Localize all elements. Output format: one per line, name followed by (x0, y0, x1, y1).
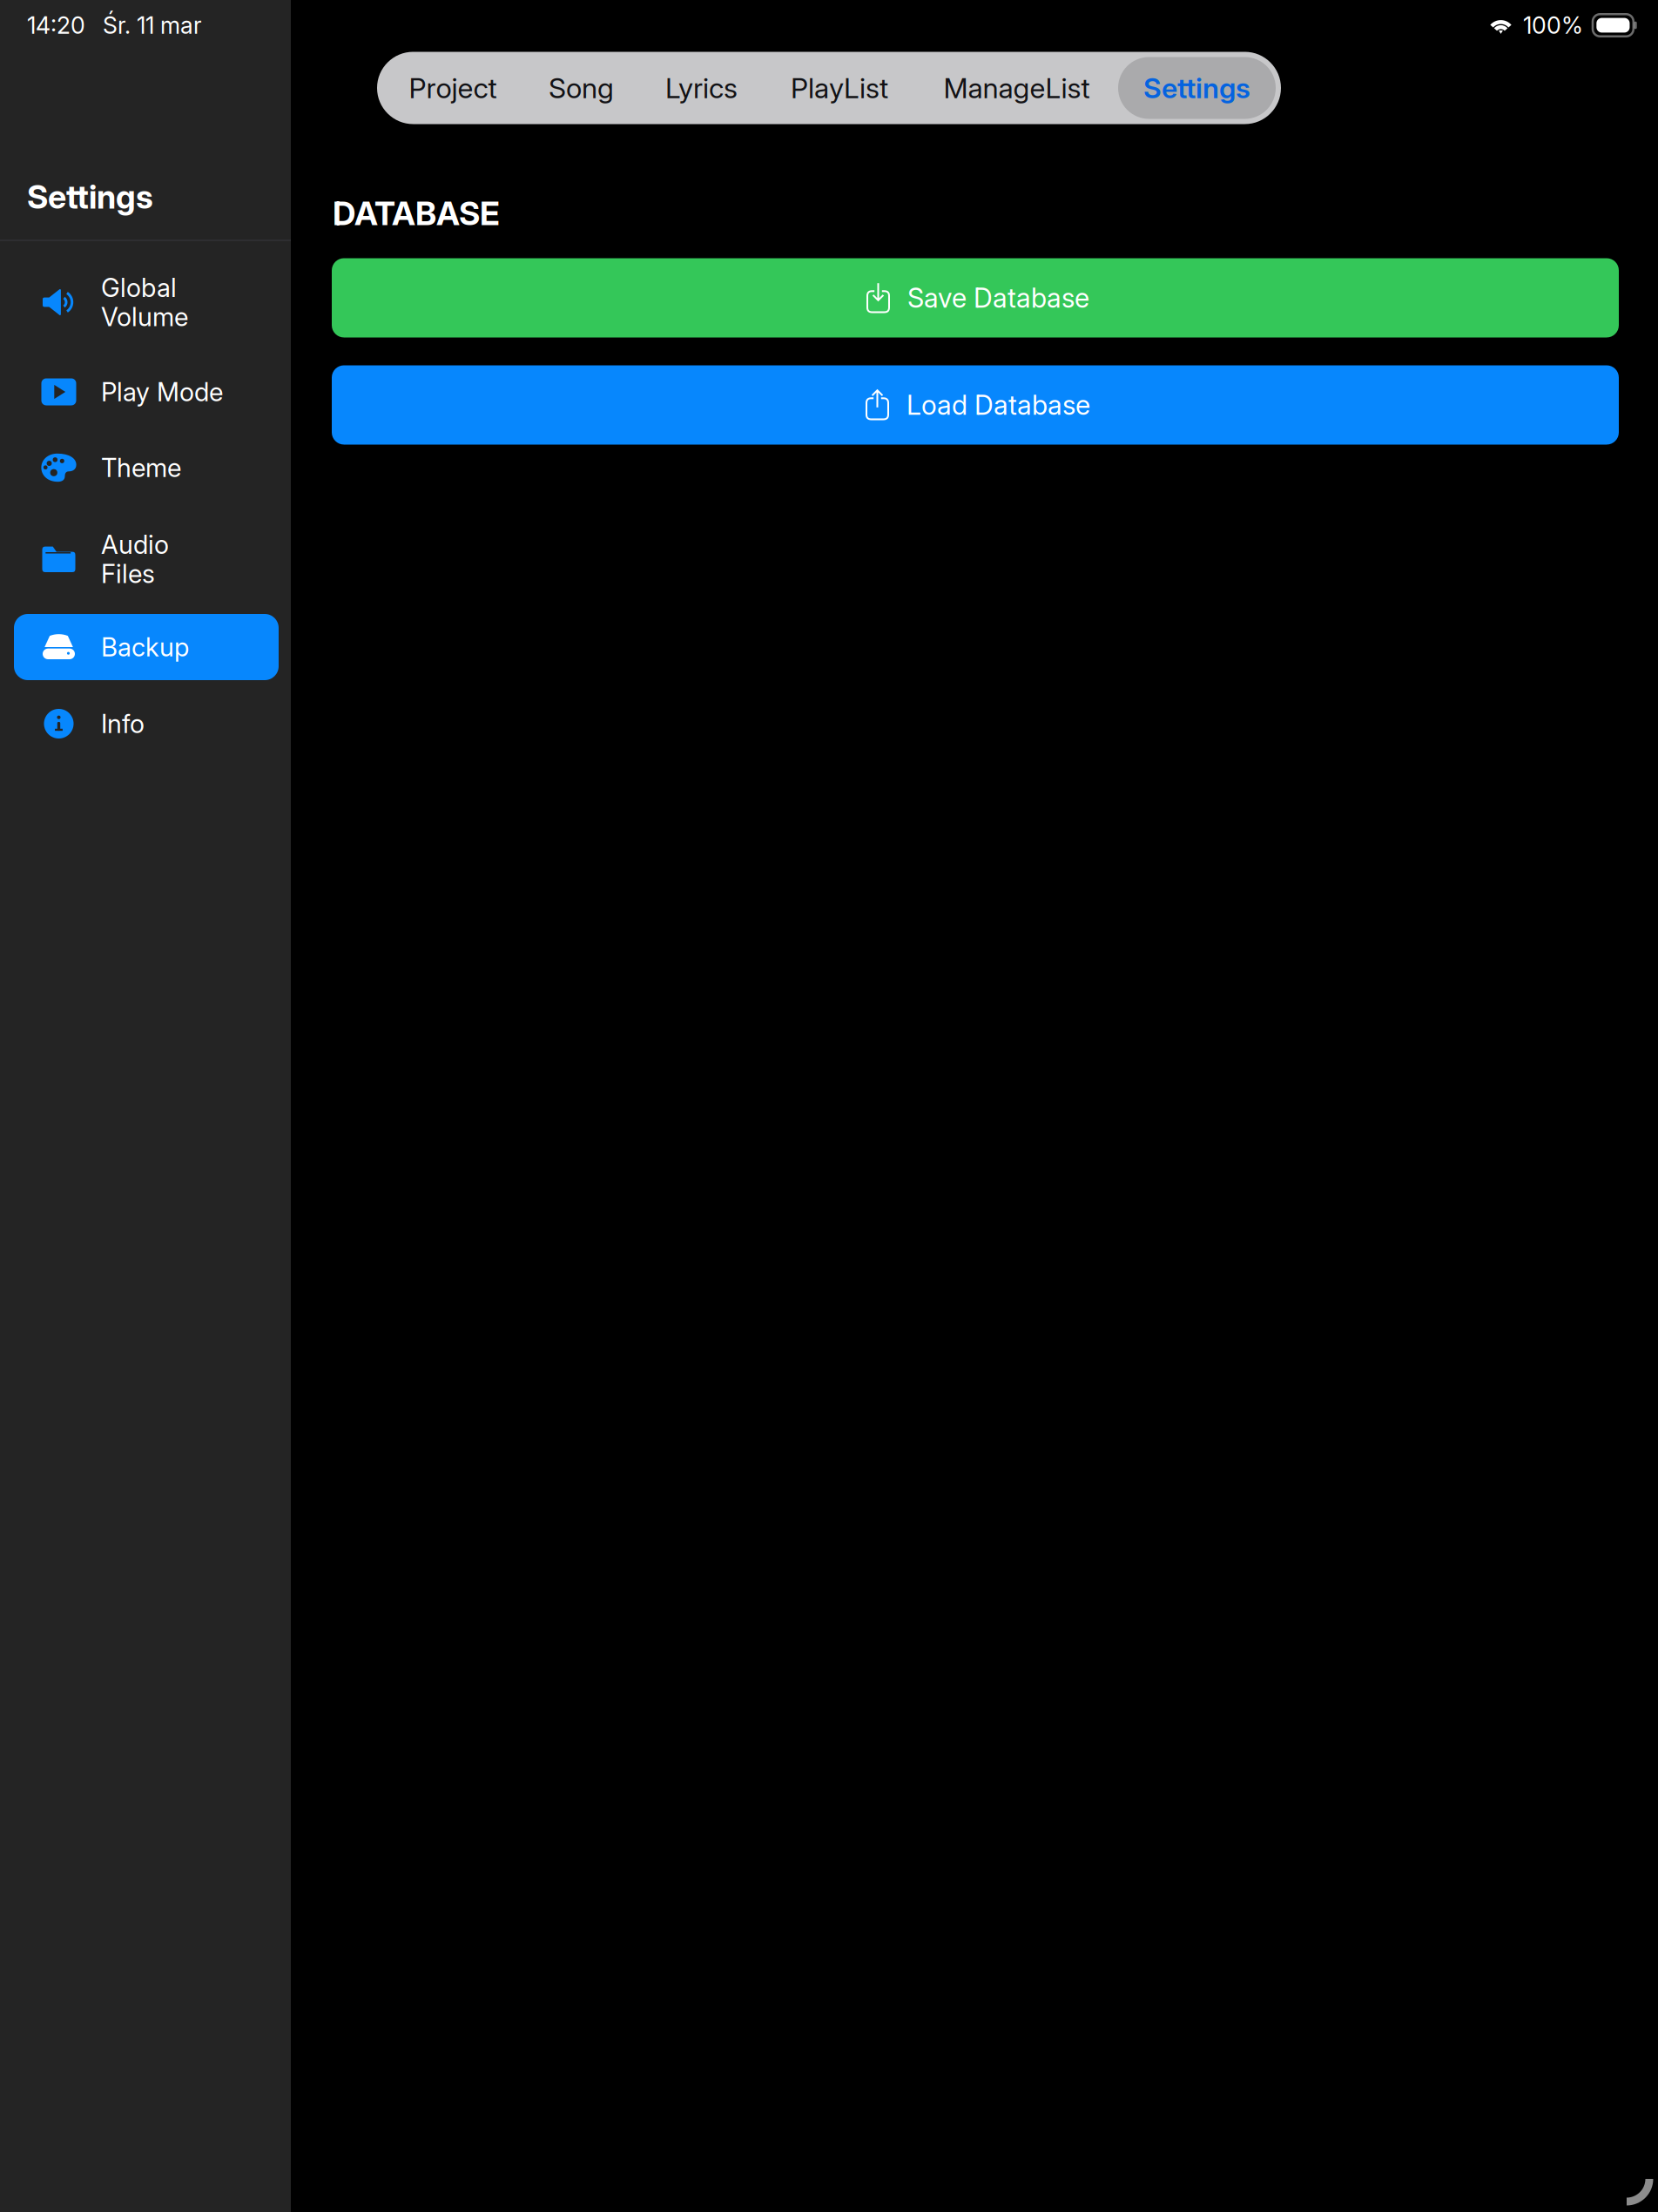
staticText: Save Database (907, 282, 1089, 314)
button[interactable]: Settings (1118, 57, 1276, 119)
staticText: Volume (101, 301, 188, 332)
staticText: 14:20 (27, 11, 85, 39)
staticText: Settings (27, 177, 153, 216)
staticText: PlayList (791, 71, 888, 105)
staticText: Load Database (907, 389, 1090, 421)
staticText: Files (101, 558, 155, 589)
staticText: Settings (1143, 71, 1250, 105)
staticText: 100% (1523, 11, 1583, 39)
button[interactable]: Info (0, 686, 291, 761)
staticText: Project (409, 71, 497, 105)
button[interactable]: Global (0, 248, 291, 356)
staticText: Song (549, 71, 614, 105)
button[interactable]: ManageList (915, 57, 1118, 119)
staticText: Audio (101, 529, 169, 560)
staticText: Global (101, 272, 177, 303)
button[interactable]: Audio (0, 505, 291, 613)
staticText: Theme (101, 452, 181, 483)
staticText: Info (101, 708, 145, 739)
button[interactable]: PlayList (764, 57, 915, 119)
staticText: DATABASE (333, 194, 500, 233)
button[interactable]: Project (382, 57, 523, 119)
button[interactable]: Load Database (332, 365, 1619, 445)
staticText: Play Mode (101, 376, 223, 407)
button[interactable]: Save Database (332, 258, 1619, 337)
staticText: ManageList (944, 71, 1090, 105)
staticText: Śr. 11 mar (103, 11, 202, 39)
staticText: Backup (101, 632, 189, 663)
button[interactable]: Lyrics (639, 57, 764, 119)
button[interactable]: Backup (14, 614, 279, 680)
button[interactable]: Theme (0, 430, 291, 505)
staticText: Lyrics (665, 71, 738, 105)
button[interactable]: Song (523, 57, 639, 119)
button[interactable]: Play Mode (0, 354, 291, 429)
